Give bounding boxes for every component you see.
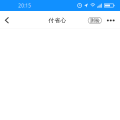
staticText: 付省心 (48, 17, 66, 24)
staticText: 20:15 (18, 2, 31, 9)
button[interactable]: 测验 (88, 15, 107, 24)
staticText: 测验 (90, 17, 100, 24)
button[interactable]: More (107, 11, 115, 27)
button[interactable]: Back (1, 12, 13, 27)
